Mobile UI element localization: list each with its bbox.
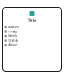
button[interactable]: Account [3,25,61,29]
staticText: About [8,43,17,47]
button[interactable]: About [3,43,61,47]
button[interactable]: Privacy [3,29,61,34]
button[interactable]: Display [3,38,61,43]
staticText: Title [28,17,36,23]
button[interactable]: Notify [3,34,61,38]
staticText: Notify [8,34,16,38]
staticText: Display [8,39,17,42]
staticText: Account [8,25,19,29]
staticText: Privacy [8,30,16,33]
